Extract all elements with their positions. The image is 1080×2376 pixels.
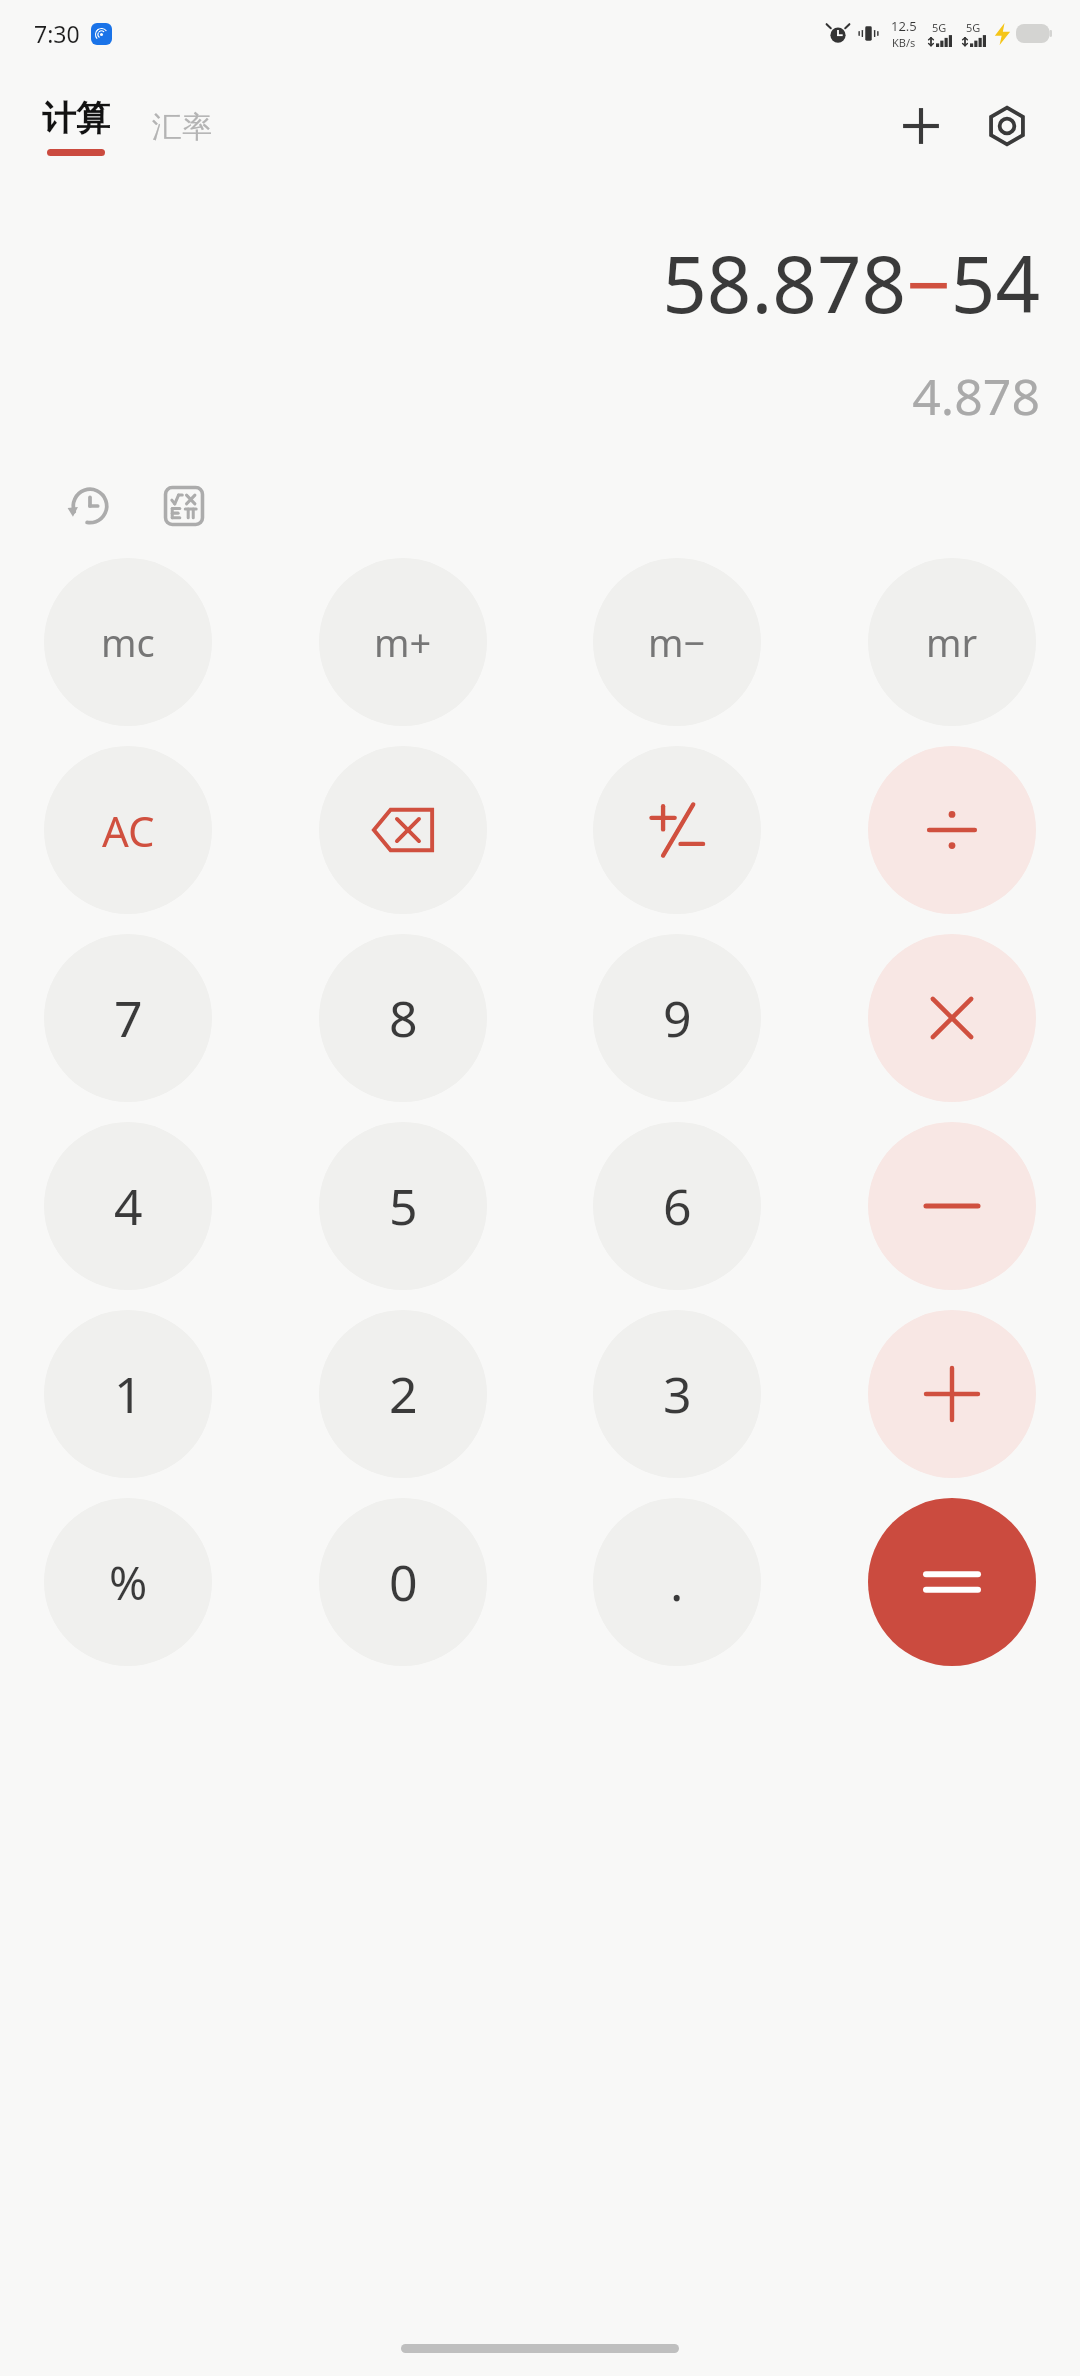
button[interactable]: . xyxy=(593,1498,761,1666)
staticText: 2 xyxy=(389,1360,418,1428)
button[interactable]: Divide xyxy=(868,746,1036,914)
button[interactable]: Collapse xyxy=(888,93,954,159)
staticText: 5 xyxy=(389,1172,418,1240)
staticText: 4.878 xyxy=(912,362,1040,430)
staticText: 4 xyxy=(114,1172,143,1240)
button[interactable]: % xyxy=(44,1498,212,1666)
button[interactable]: Multiply xyxy=(868,934,1036,1102)
staticText: . xyxy=(670,1548,684,1616)
staticText: 5G xyxy=(966,20,981,35)
staticText: AC xyxy=(102,802,155,859)
button[interactable]: Backspace xyxy=(319,746,487,914)
button[interactable]: Equals xyxy=(868,1498,1036,1666)
button[interactable]: Plus xyxy=(868,1310,1036,1478)
staticText: 8 xyxy=(389,984,418,1052)
staticText: mr xyxy=(926,616,978,668)
button[interactable]: 4 xyxy=(44,1122,212,1290)
staticText: 汇率 xyxy=(152,108,212,146)
button[interactable]: 8 xyxy=(319,934,487,1102)
button[interactable]: 3 xyxy=(593,1310,761,1478)
button[interactable]: 5 xyxy=(319,1122,487,1290)
button[interactable]: Scientific xyxy=(154,476,214,536)
staticText: 9 xyxy=(663,984,692,1052)
staticText: 12.5 xyxy=(891,17,917,35)
button[interactable]: Plus minus xyxy=(593,746,761,914)
button[interactable]: mr xyxy=(868,558,1036,726)
staticText: 计算 xyxy=(42,97,110,140)
button[interactable]: 1 xyxy=(44,1310,212,1478)
button[interactable]: 9 xyxy=(593,934,761,1102)
button[interactable]: 2 xyxy=(319,1310,487,1478)
staticText: % xyxy=(109,1551,148,1614)
staticText: 5G xyxy=(932,20,947,35)
staticText: m+ xyxy=(374,616,432,668)
staticText: 0 xyxy=(389,1548,418,1616)
staticText: m− xyxy=(648,616,706,668)
button[interactable]: 0 xyxy=(319,1498,487,1666)
staticText: 7 xyxy=(114,984,143,1052)
staticText: 7:30 xyxy=(34,18,80,49)
staticText: KB/s xyxy=(892,35,916,50)
button[interactable]: 6 xyxy=(593,1122,761,1290)
button[interactable]: History xyxy=(60,476,120,536)
button[interactable]: m+ xyxy=(319,558,487,726)
button[interactable]: m− xyxy=(593,558,761,726)
button[interactable]: AC xyxy=(44,746,212,914)
staticText: 3 xyxy=(663,1360,692,1428)
button[interactable]: 汇率 xyxy=(148,104,216,150)
staticText: 6 xyxy=(663,1172,692,1240)
button[interactable]: mc xyxy=(44,558,212,726)
button[interactable]: 计算 xyxy=(38,97,114,156)
button[interactable]: 7 xyxy=(44,934,212,1102)
button[interactable]: Minus xyxy=(868,1122,1036,1290)
staticText: mc xyxy=(101,616,155,668)
staticText: 58.878−54 xyxy=(662,230,1040,336)
button[interactable]: Settings xyxy=(974,93,1040,159)
staticText: 1 xyxy=(114,1360,143,1428)
